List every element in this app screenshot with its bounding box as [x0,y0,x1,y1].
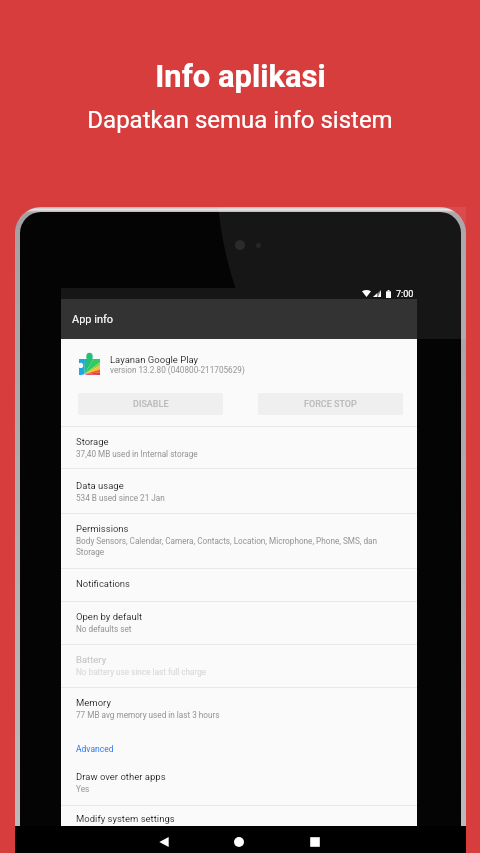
button[interactable]: Open by default [61,603,417,634]
button[interactable]: DISABLE [78,393,223,415]
staticText: No battery use since last full charge [76,667,207,677]
staticText: DISABLE [133,399,169,410]
staticText: No defaults set [76,624,132,634]
staticText: Battery [76,654,107,665]
button[interactable]: Advanced [61,740,417,758]
staticText: Layanan Google Play [110,354,199,365]
staticText: FORCE STOP [304,399,357,410]
staticText: Yes [76,784,90,794]
button[interactable]: FORCE STOP [258,393,403,415]
button[interactable]: Data usage [61,472,417,503]
staticText: Memory [76,697,111,708]
button[interactable]: Back [155,833,173,851]
button[interactable]: Home [230,833,248,851]
staticText: Storage [76,436,109,447]
staticText: Open by default [76,611,143,622]
staticText: 7:00 [396,289,414,300]
staticText: App info [72,313,114,326]
button[interactable]: Memory [61,689,417,720]
staticText: 37,40 MB used in Internal storage [76,449,198,459]
staticText: Advanced [76,744,114,754]
staticText: version 13.2.80 (040800-211705629) [110,365,245,375]
button[interactable]: Battery [61,646,417,677]
button[interactable]: Modify system settings [61,805,417,824]
button[interactable]: Draw over other apps [61,763,417,794]
staticText: Modify system settings [76,813,175,824]
staticText: 534 B used since 21 Jan [76,493,165,503]
button[interactable]: Permissions [61,515,417,557]
staticText: Dapatkan semua info sistem [87,106,393,134]
staticText: Data usage [76,480,124,491]
staticText: Info aplikasi [155,58,326,94]
button[interactable]: Notifications [61,570,417,589]
button[interactable]: Recent apps [306,833,324,851]
button[interactable]: Storage [61,428,417,459]
staticText: 77 MB avg memory used in last 3 hours [76,710,220,720]
staticText: Draw over other apps [76,771,166,782]
staticText: Notifications [76,578,131,589]
staticText: Permissions [76,523,129,534]
staticText: Body Sensors, Calendar, Camera, Contacts… [76,536,403,557]
